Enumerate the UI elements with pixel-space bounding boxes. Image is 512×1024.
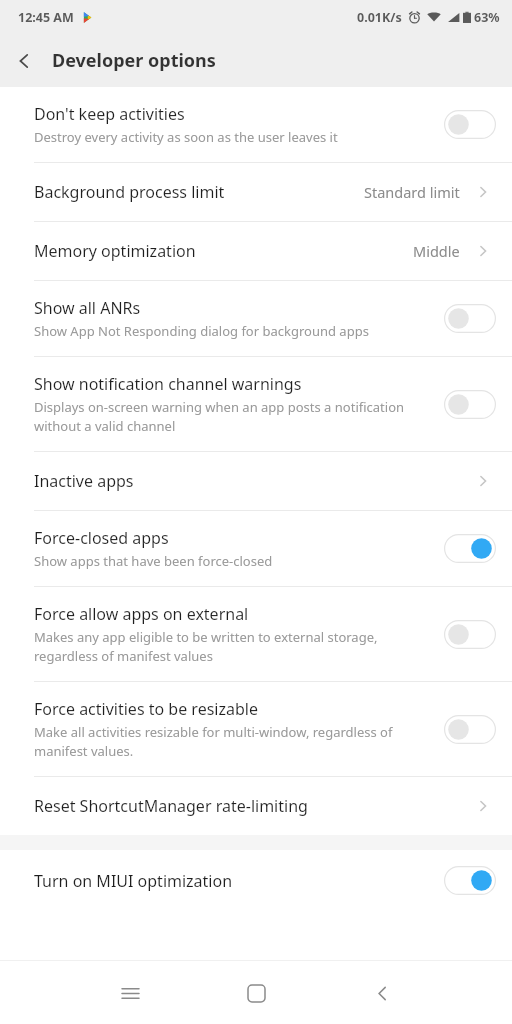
staticText: 63% (474, 9, 500, 26)
button[interactable]: Toggle off (444, 304, 496, 333)
staticText: Makes any app eligible to be written to … (34, 628, 434, 665)
staticText: Inactive apps (34, 470, 134, 492)
staticText: Show all ANRs (34, 297, 141, 319)
staticText: Developer options (52, 48, 216, 73)
staticText: Show apps that have been force-closed (34, 552, 273, 570)
button[interactable]: Turn on MIUI optimization (0, 850, 512, 911)
button[interactable]: Recent apps (106, 969, 154, 1017)
staticText: Memory optimization (34, 240, 196, 262)
staticText: Displays on-screen warning when an app p… (34, 398, 434, 435)
button[interactable]: Background process limit (0, 163, 512, 221)
button[interactable]: Inactive apps (0, 452, 512, 510)
button[interactable]: Back (0, 37, 48, 85)
button[interactable]: Toggle off (444, 620, 496, 649)
button[interactable]: Force activities to be resizable (0, 682, 512, 776)
staticText: Background process limit (34, 181, 225, 203)
staticText: Don't keep activities (34, 103, 185, 125)
staticText: Force-closed apps (34, 527, 169, 549)
button[interactable]: Memory optimization (0, 222, 512, 280)
button[interactable]: Toggle on (444, 866, 496, 895)
staticText: Turn on MIUI optimization (34, 870, 233, 892)
button[interactable]: Show notification channel warnings (0, 357, 512, 451)
button[interactable]: Home (232, 969, 280, 1017)
button[interactable]: Toggle on (444, 534, 496, 563)
staticText: Make all activities resizable for multi-… (34, 723, 434, 760)
button[interactable]: Toggle off (444, 390, 496, 419)
button[interactable]: Toggle off (444, 110, 496, 139)
button[interactable]: Force allow apps on external (0, 587, 512, 681)
staticText: Show App Not Responding dialog for backg… (34, 322, 369, 340)
staticText: 12:45 AM (18, 9, 74, 26)
button[interactable]: Toggle off (444, 715, 496, 744)
staticText: 0.01K/s (357, 9, 402, 26)
staticText: Force activities to be resizable (34, 698, 258, 720)
button[interactable]: Don't keep activities (0, 87, 512, 162)
staticText: Standard limit (364, 182, 460, 202)
staticText: Reset ShortcutManager rate-limiting (34, 795, 308, 817)
button[interactable]: Show all ANRs (0, 281, 512, 356)
staticText: Show notification channel warnings (34, 373, 302, 395)
staticText: Middle (413, 241, 460, 261)
button[interactable]: Force-closed apps (0, 511, 512, 586)
staticText: Destroy every activity as soon as the us… (34, 128, 338, 146)
staticText: Force allow apps on external (34, 603, 249, 625)
button[interactable]: Reset ShortcutManager rate-limiting (0, 777, 512, 835)
button[interactable]: Back (358, 969, 406, 1017)
